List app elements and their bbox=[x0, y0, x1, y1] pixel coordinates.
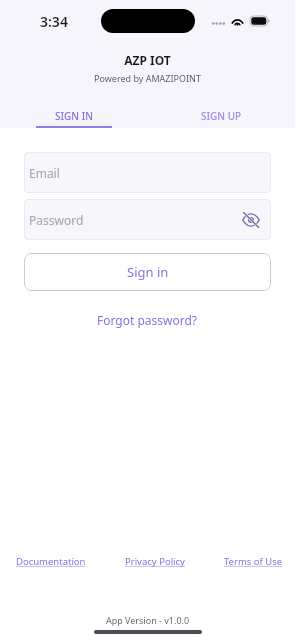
staticText: Privacy Policy bbox=[125, 555, 185, 568]
staticText: 3:34 bbox=[40, 12, 68, 31]
button[interactable]: Terms of Use bbox=[224, 555, 283, 568]
button[interactable]: Show password bbox=[237, 206, 265, 234]
staticText: Password bbox=[29, 212, 84, 228]
staticText: AZP IOT bbox=[0, 52, 295, 68]
button[interactable]: Sign in bbox=[24, 253, 271, 291]
staticText: Email bbox=[29, 165, 60, 181]
staticText: App Version - v1.0.0 bbox=[0, 614, 295, 626]
staticText: SIGN IN bbox=[55, 109, 93, 123]
button[interactable]: Privacy Policy bbox=[125, 555, 185, 568]
button[interactable]: Email bbox=[24, 152, 271, 193]
staticText: Sign in bbox=[127, 263, 169, 281]
staticText: Powered by AMAZIPOINT bbox=[0, 72, 295, 84]
button[interactable]: Password bbox=[24, 199, 271, 240]
button[interactable]: SIGN IN bbox=[0, 94, 147, 128]
button[interactable]: SIGN UP bbox=[147, 94, 295, 128]
staticText: Forgot password? bbox=[97, 312, 198, 328]
button[interactable]: Documentation bbox=[16, 555, 86, 568]
staticText: Documentation bbox=[16, 555, 86, 568]
staticText: SIGN UP bbox=[201, 109, 242, 123]
button[interactable]: Forgot password? bbox=[24, 312, 271, 328]
staticText: Terms of Use bbox=[224, 555, 283, 568]
